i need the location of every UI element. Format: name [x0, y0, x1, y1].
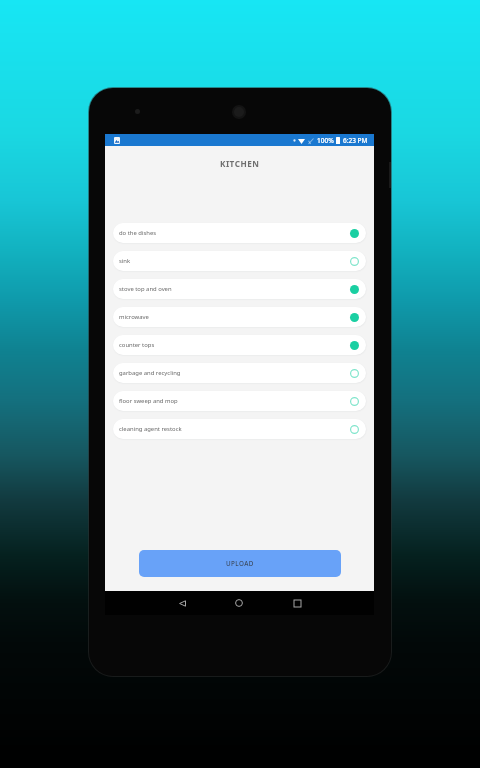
button[interactable]: microwave — [113, 307, 366, 327]
button[interactable]: floor sweep and mop — [113, 391, 366, 411]
staticText: microwave — [119, 313, 149, 321]
staticText: 100% — [317, 136, 334, 145]
button[interactable]: cleaning agent restock — [113, 419, 366, 439]
button[interactable]: do the dishes — [113, 223, 366, 243]
button[interactable]: sink — [113, 251, 366, 271]
staticText: floor sweep and mop — [119, 397, 178, 405]
staticText: stove top and oven — [119, 285, 172, 293]
button[interactable]: Back — [167, 591, 197, 615]
button[interactable]: Home — [224, 591, 254, 615]
button[interactable]: stove top and oven — [113, 279, 366, 299]
staticText: 6:23 PM — [343, 136, 368, 145]
staticText: KITCHEN — [220, 158, 260, 169]
button[interactable]: garbage and recycling — [113, 363, 366, 383]
staticText: sink — [119, 257, 131, 265]
staticText: garbage and recycling — [119, 369, 181, 377]
staticText: do the dishes — [119, 229, 157, 237]
staticText: UPLOAD — [226, 559, 254, 568]
button[interactable]: Recent apps — [282, 591, 312, 615]
staticText: counter tops — [119, 341, 155, 349]
button[interactable]: counter tops — [113, 335, 366, 355]
staticText: cleaning agent restock — [119, 425, 182, 433]
button[interactable]: UPLOAD — [139, 550, 341, 577]
